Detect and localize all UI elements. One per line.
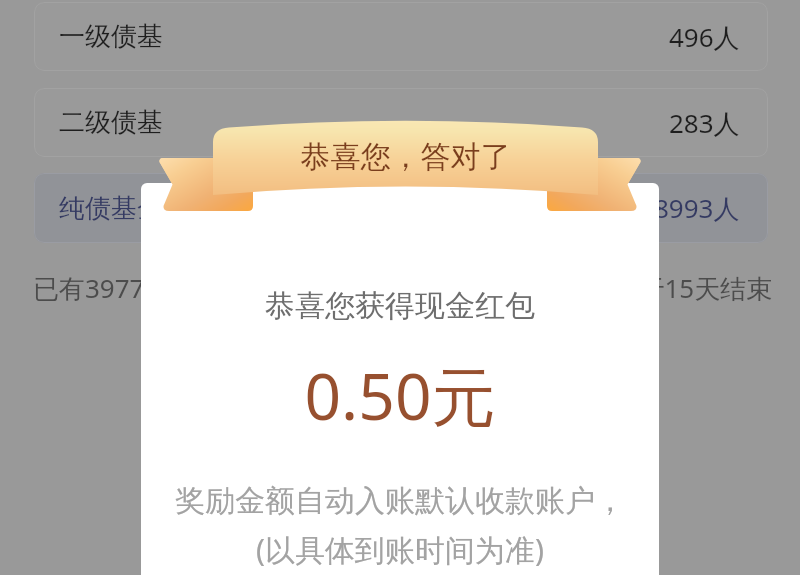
button[interactable]: 一级债基 [34,2,768,71]
staticText: 纯债基金 [59,192,163,225]
staticText: 恭喜您获得现金红包 [141,287,659,325]
staticText: 恭喜您，答对了 [213,138,598,176]
staticText: 奖励金额自动入账默认收款账户， (以具体到账时间为准) [141,482,659,570]
button[interactable] [141,183,659,575]
staticText: 8993人 [654,190,740,226]
staticText: 283人 [669,105,740,141]
staticText: 二级债基 [59,106,163,139]
button[interactable]: 纯债基金 [34,173,768,243]
button[interactable]: 二级债基 [34,88,768,157]
staticText: 已有3977人参与活动，答题瓜分百万现金，本活动将于15天结束 [33,270,773,306]
staticText: 0.50元 [141,352,659,439]
staticText: 496人 [669,19,740,55]
staticText: 一级债基 [59,20,163,53]
